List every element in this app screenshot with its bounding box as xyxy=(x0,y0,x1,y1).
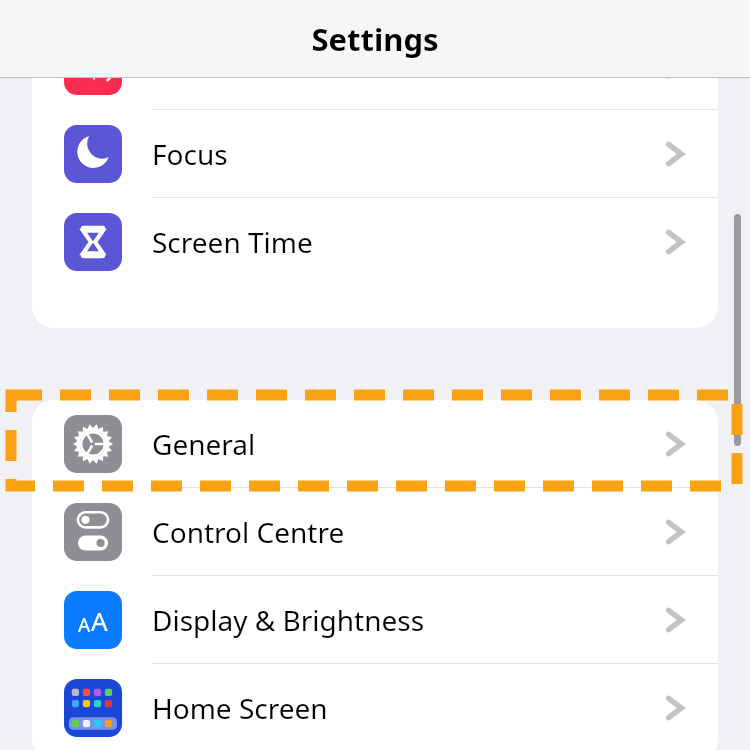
button[interactable]: General xyxy=(32,400,718,488)
staticText: Home Screen xyxy=(152,689,328,727)
button[interactable]: Focus xyxy=(32,110,718,198)
button[interactable]: A xyxy=(32,576,718,664)
button[interactable]: Sounds xyxy=(32,22,718,110)
staticText: Settings xyxy=(0,18,750,60)
staticText: General xyxy=(152,425,256,463)
staticText: Control Centre xyxy=(152,513,345,551)
staticText: A xyxy=(78,612,91,638)
staticText: Display & Brightness xyxy=(152,601,425,639)
staticText: Screen Time xyxy=(152,223,313,261)
staticText: A xyxy=(91,603,108,638)
button[interactable]: Control Centre xyxy=(32,488,718,576)
button[interactable]: Screen Time xyxy=(32,198,718,286)
button[interactable]: Home Screen xyxy=(32,664,718,750)
staticText: Sounds xyxy=(152,47,250,85)
staticText: Focus xyxy=(152,135,228,173)
